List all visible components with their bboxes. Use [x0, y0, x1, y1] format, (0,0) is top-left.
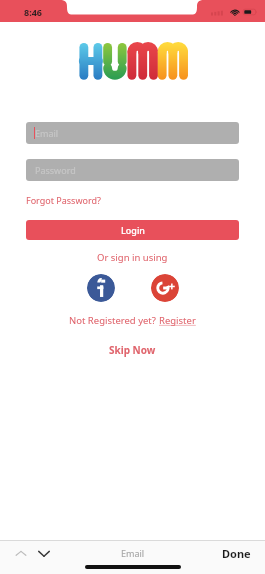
staticText: Login [121, 224, 145, 236]
button[interactable]: Previous field [10, 543, 32, 565]
staticText: Forgot Password? [26, 194, 101, 206]
button[interactable]: Email [26, 122, 239, 144]
staticText: Done [222, 546, 251, 561]
button[interactable]: Sign in with Facebook [87, 274, 115, 302]
staticText: Not Registered yet? [69, 314, 159, 327]
staticText: Password [35, 164, 76, 176]
button[interactable]: Register [159, 314, 196, 327]
staticText: Email [121, 547, 145, 559]
button[interactable]: Done [208, 542, 265, 565]
staticText: Or sign in using [97, 251, 168, 264]
staticText: Skip Now [109, 343, 156, 357]
button[interactable]: Next field [33, 543, 55, 565]
button[interactable]: Login [26, 220, 239, 240]
button[interactable]: Forgot Password? [26, 192, 101, 208]
staticText: Email [35, 127, 59, 139]
staticText: 8:46 [24, 6, 42, 18]
button[interactable]: Skip Now [101, 341, 164, 359]
staticText: Register [159, 314, 196, 327]
button[interactable]: Sign in with Google Plus [151, 274, 179, 302]
button[interactable]: Password [26, 159, 239, 181]
